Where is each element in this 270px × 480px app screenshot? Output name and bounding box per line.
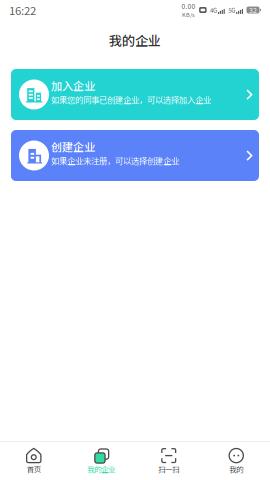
staticText: 0.00 [182,1,196,11]
staticText: 如果您的同事已创建企业，可以选择加入企业 [51,93,211,106]
staticText: KB/s [182,10,195,19]
staticText: 16:22 [9,2,36,18]
staticText: 首页 [27,464,41,474]
staticText: 创建企业 [51,138,95,154]
button[interactable]: 首页 [0,442,67,480]
button[interactable]: 我的 [202,442,270,480]
staticText: 4G [210,6,217,14]
staticText: 我的 [229,464,243,474]
staticText: 5G [228,6,235,14]
button[interactable]: 我的企业 [67,442,135,480]
staticText: 扫一扫 [158,464,179,474]
staticText: 如果企业未注册，可以选择创建企业 [51,154,179,167]
staticText: 加入企业 [51,77,95,93]
button[interactable]: 创建企业 [11,130,259,181]
staticText: 我的企业 [87,464,115,474]
button[interactable]: 扫一扫 [135,442,202,480]
button[interactable]: 加入企业 [11,69,259,120]
staticText: 32 [249,5,257,15]
staticText: 我的企业 [109,30,161,49]
